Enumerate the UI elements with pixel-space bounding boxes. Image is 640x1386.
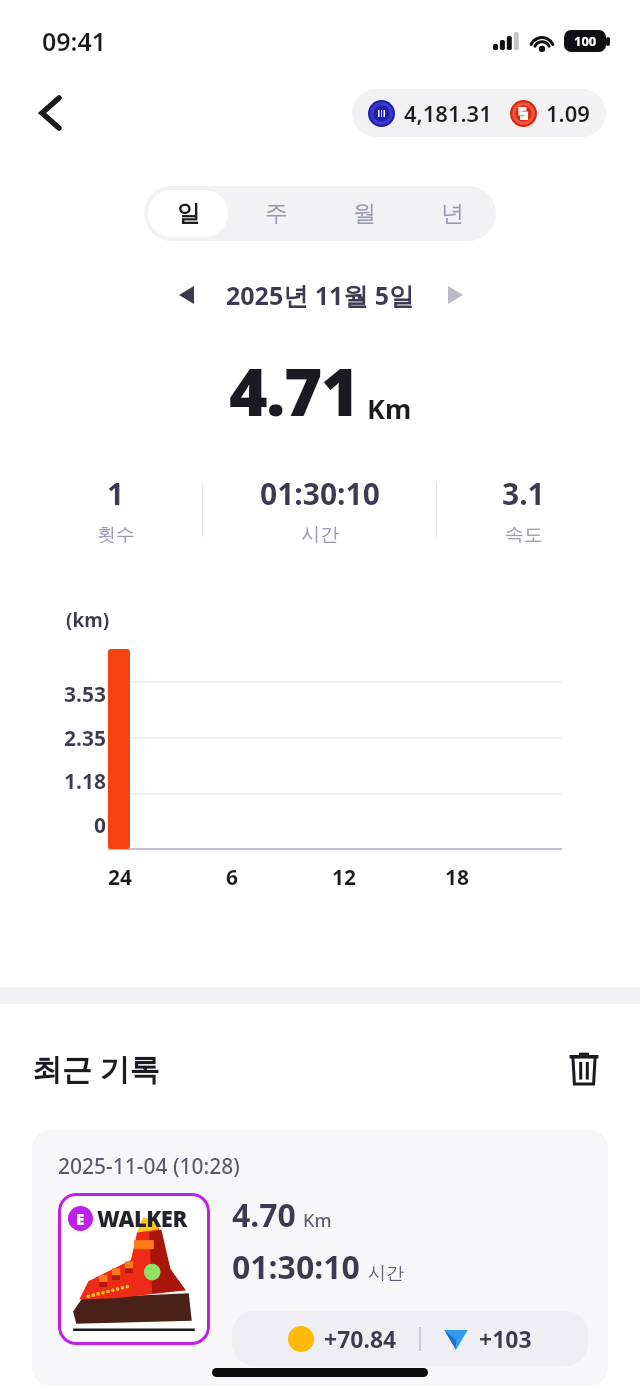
- button[interactable]: 2025-11-04 (10:28): [32, 1130, 608, 1386]
- staticText: 4,181.31: [404, 98, 492, 128]
- staticText: 주: [265, 199, 288, 228]
- staticText: 년: [441, 199, 464, 228]
- staticText: 시간: [301, 523, 339, 547]
- staticText: 1.09: [546, 98, 590, 128]
- staticText: 09:41: [42, 24, 107, 58]
- staticText: 시간: [368, 1262, 404, 1285]
- staticText: 최근 기록: [32, 1048, 160, 1089]
- staticText: 속도: [505, 523, 543, 547]
- staticText: 24: [100, 863, 140, 892]
- staticText: +103: [479, 1323, 532, 1354]
- staticText: 3.1: [502, 473, 545, 514]
- staticText: (km): [66, 607, 110, 633]
- staticText: 3.53: [64, 680, 106, 709]
- staticText: 01:30:10: [232, 1245, 360, 1289]
- staticText: 2025-11-04 (10:28): [58, 1152, 240, 1181]
- staticText: 횟수: [97, 523, 135, 547]
- staticText: 0: [93, 811, 106, 840]
- staticText: 4.70: [232, 1193, 296, 1237]
- staticText: 2.35: [64, 724, 106, 753]
- button[interactable]: Back: [24, 87, 76, 139]
- staticText: 월: [353, 199, 376, 228]
- button[interactable]: 년: [412, 190, 492, 237]
- button[interactable]: 1: [30, 473, 202, 547]
- staticText: E: [76, 1209, 85, 1229]
- button[interactable]: +70.84: [232, 1311, 588, 1366]
- staticText: Km: [303, 1208, 332, 1233]
- button[interactable]: 일: [148, 190, 228, 237]
- button[interactable]: 주: [236, 190, 316, 237]
- staticText: Km: [367, 390, 412, 427]
- button[interactable]: Previous day: [164, 273, 208, 317]
- button[interactable]: Next day: [433, 273, 477, 317]
- button[interactable]: 3.1: [437, 473, 610, 547]
- button[interactable]: 01:30:10: [203, 473, 436, 547]
- button[interactable]: Delete: [560, 1044, 608, 1092]
- staticText: 12: [324, 863, 364, 892]
- staticText: +70.84: [324, 1323, 397, 1354]
- staticText: 1.18: [64, 767, 106, 796]
- staticText: 01:30:10: [260, 473, 380, 514]
- staticText: 4.71: [229, 345, 359, 435]
- staticText: 2025년 11월 5일: [226, 278, 415, 312]
- staticText: 18: [437, 863, 477, 892]
- button[interactable]: 월: [324, 190, 404, 237]
- staticText: 일: [177, 199, 200, 228]
- staticText: 6: [212, 863, 252, 892]
- staticText: 100: [574, 32, 597, 50]
- button[interactable]: 4,181.31: [352, 89, 606, 137]
- staticText: WALKER: [97, 1203, 187, 1233]
- staticText: 1: [107, 473, 125, 514]
